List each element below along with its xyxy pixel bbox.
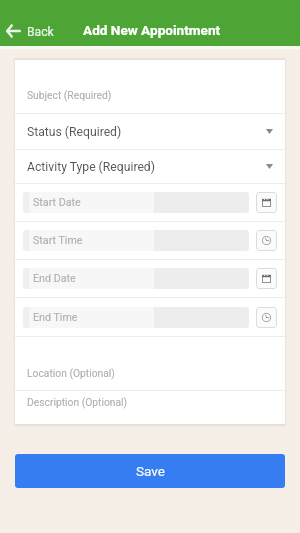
button[interactable]: Pick time [256,307,277,328]
button[interactable]: Location (Optional) [15,337,285,390]
button[interactable]: Pick date [256,192,277,213]
staticText: Start Time [33,234,83,247]
staticText: Save [136,463,165,479]
button[interactable]: Save [15,454,285,488]
button[interactable]: Status (Required) [15,114,285,149]
button[interactable]: Back [0,14,62,46]
button[interactable]: End Date [23,268,249,289]
button[interactable]: Description (Optional) [15,391,285,424]
staticText: End Time [33,311,78,324]
staticText: Status (Required) [27,125,122,139]
staticText: Activity Type (Required) [27,160,155,174]
staticText: Subject (Required) [27,89,112,101]
staticText: Description (Optional) [27,396,128,408]
staticText: Start Date [33,196,81,209]
button[interactable]: Start Time [23,230,249,251]
button[interactable]: End Time [23,307,249,328]
button[interactable]: Start Date [23,192,249,213]
staticText: Back [27,25,54,39]
button[interactable]: Activity Type (Required) [15,150,285,183]
button[interactable]: Pick time [256,230,277,251]
button[interactable]: Pick date [256,268,277,289]
staticText: End Date [33,272,76,285]
button[interactable]: Subject (Required) [15,60,285,113]
staticText: Add New Appointment [83,22,221,38]
staticText: Location (Optional) [27,367,115,379]
